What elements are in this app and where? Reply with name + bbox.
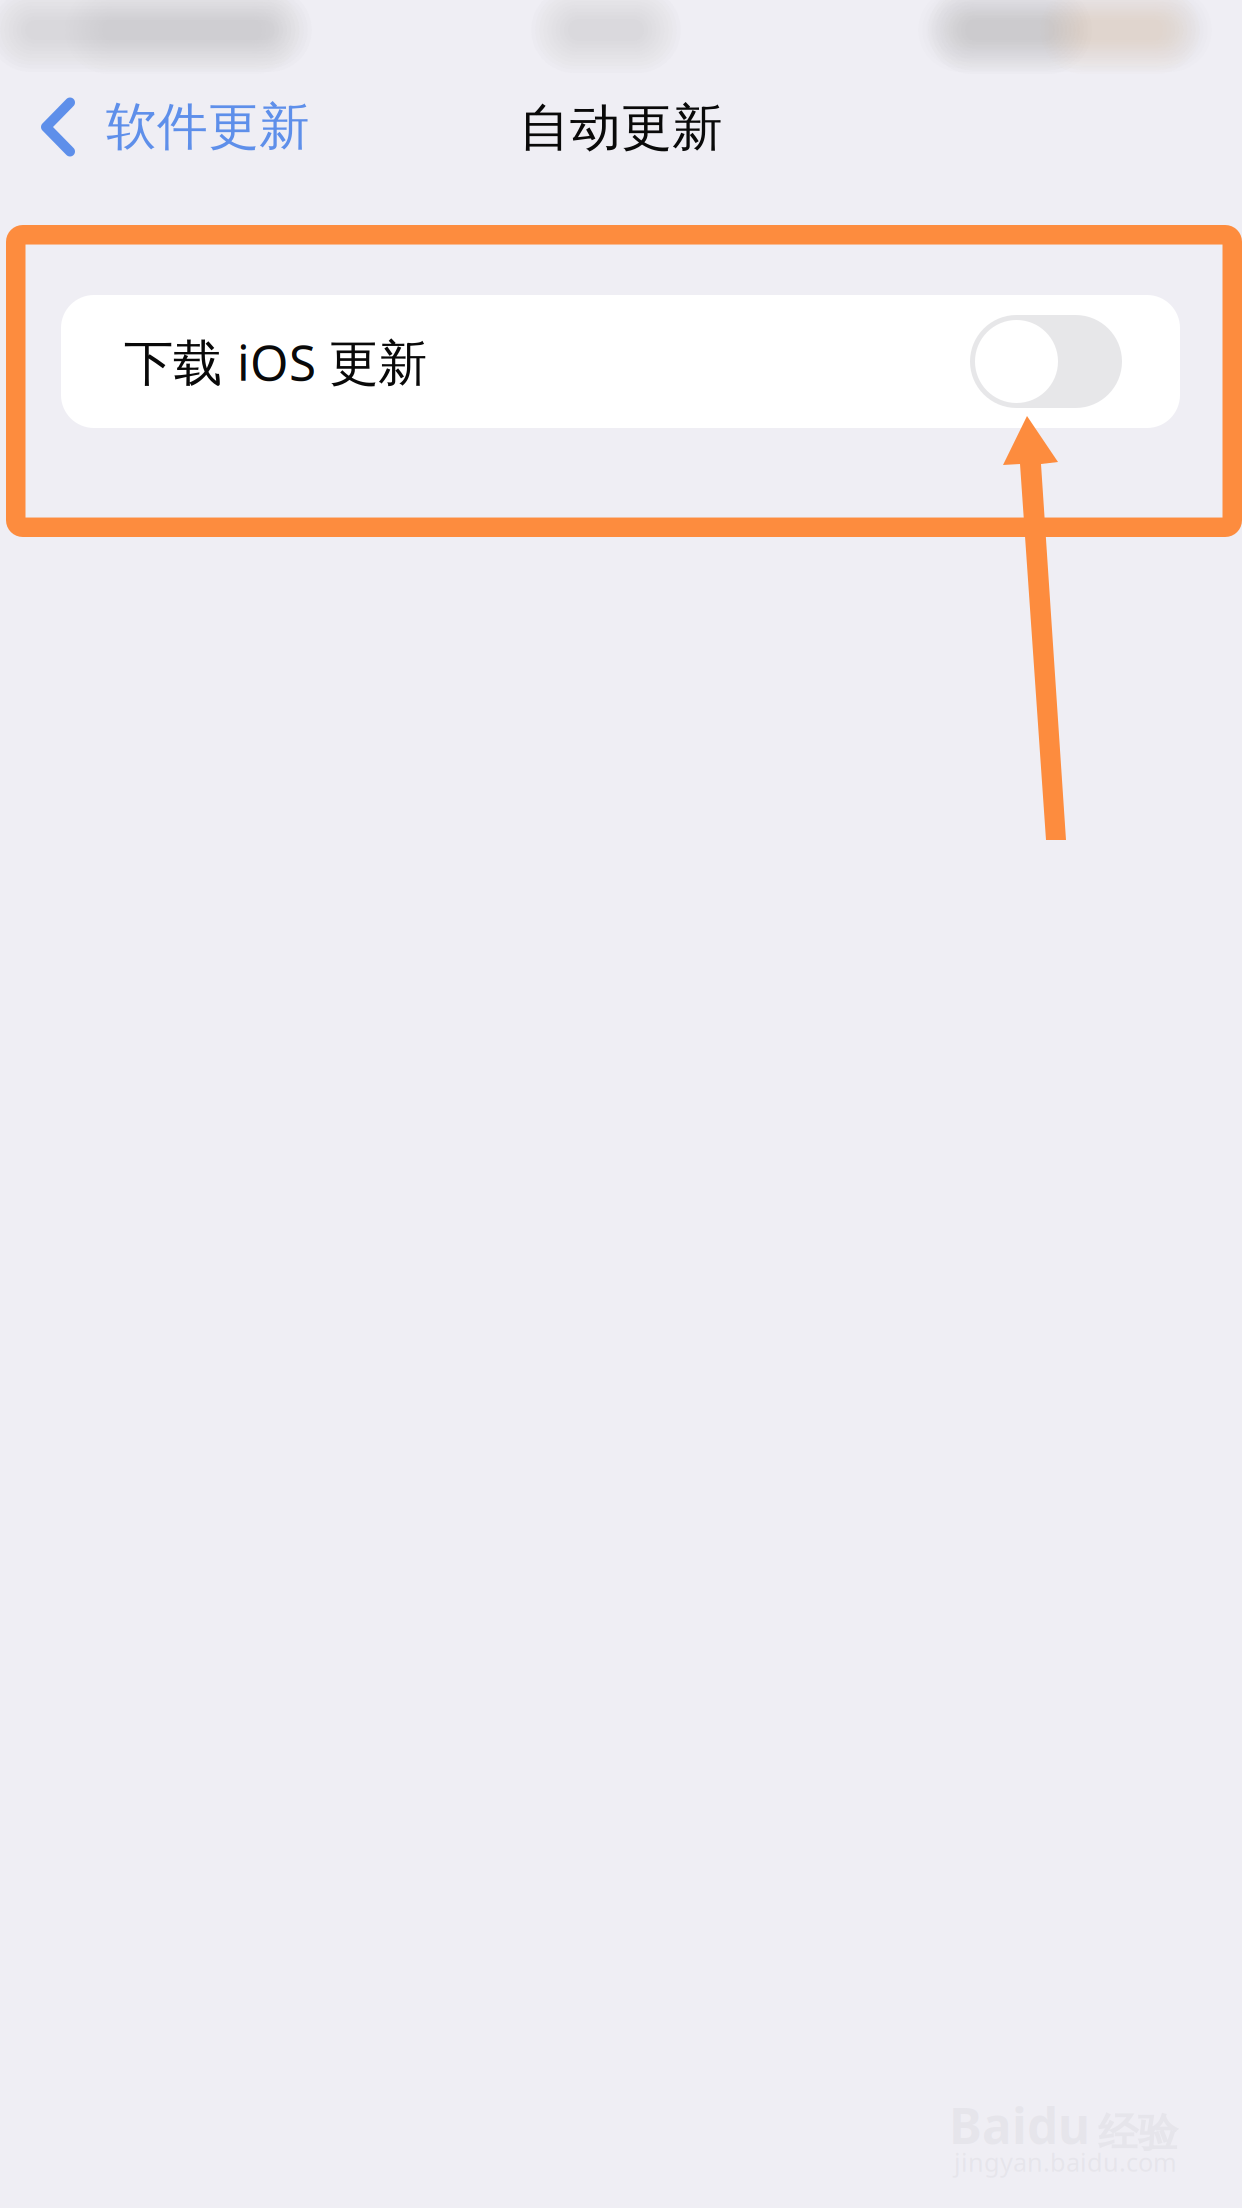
- staticText: 软件更新: [106, 96, 310, 158]
- staticText: 经验: [1098, 2108, 1178, 2157]
- staticText: Baidu: [949, 2092, 1090, 2157]
- staticText: 自动更新: [519, 97, 723, 159]
- button[interactable]: 下载 iOS 更新: [61, 295, 1180, 428]
- button[interactable]: 返回软件更新: [0, 90, 340, 164]
- staticText: 下载 iOS 更新: [124, 329, 427, 394]
- staticText: jingyan.baidu.com: [954, 2145, 1177, 2179]
